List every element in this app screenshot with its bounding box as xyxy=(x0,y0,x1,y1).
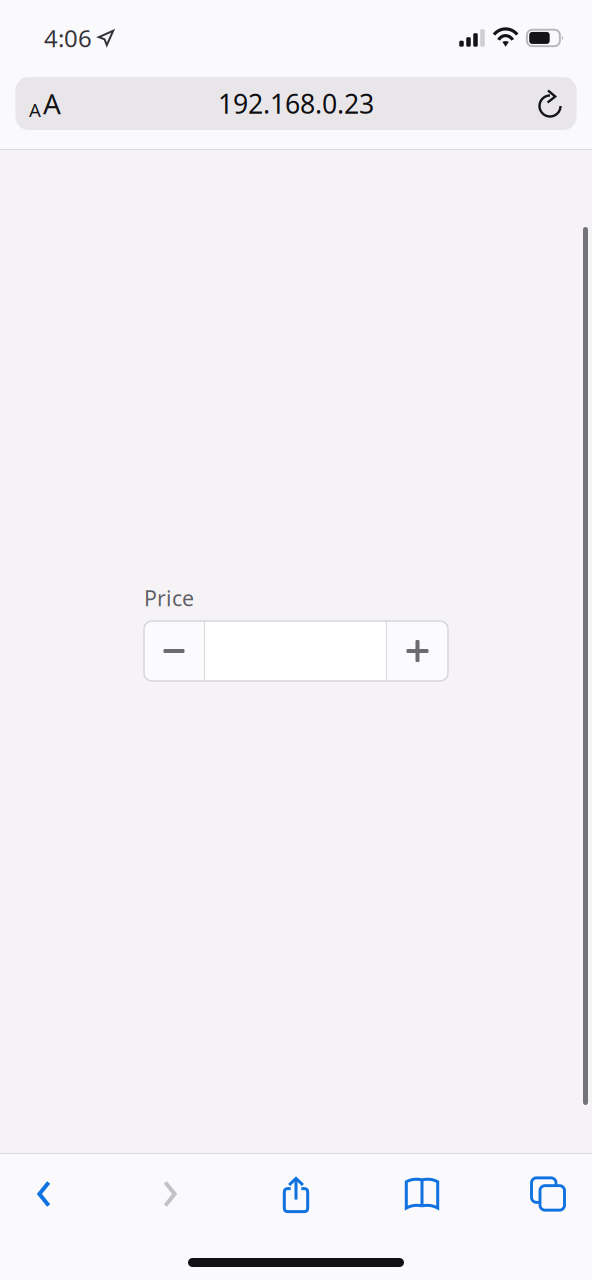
button[interactable]: Reload xyxy=(517,77,576,130)
button[interactable]: Increase price xyxy=(387,621,448,681)
button[interactable]: Share xyxy=(252,1154,340,1234)
button[interactable]: Decrease price xyxy=(144,621,204,681)
button[interactable]: Back xyxy=(0,1154,88,1234)
staticText: A xyxy=(29,97,41,122)
button[interactable]: Bookmarks xyxy=(378,1154,466,1234)
staticText: 192.168.0.23 xyxy=(218,86,374,121)
staticText: Price xyxy=(144,584,194,612)
button[interactable]: Page settings xyxy=(15,77,74,130)
button[interactable]: Tabs xyxy=(504,1154,592,1234)
staticText: A xyxy=(43,85,61,122)
button[interactable]: Forward xyxy=(126,1154,214,1234)
staticText: 4:06 xyxy=(44,22,92,54)
